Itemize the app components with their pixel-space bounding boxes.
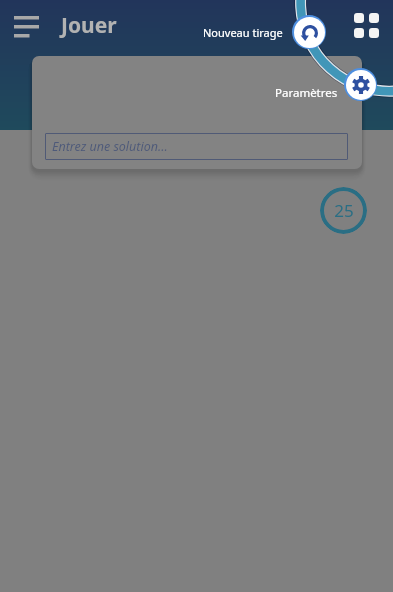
staticText: 25 xyxy=(334,199,354,222)
staticText: Jouer xyxy=(61,11,117,40)
button[interactable] xyxy=(0,130,393,592)
button[interactable]: 25 xyxy=(320,187,367,234)
staticText: Entrez une solution... xyxy=(52,138,168,155)
button[interactable]: Entrez une solution... xyxy=(45,133,348,160)
button[interactable]: Menu grid xyxy=(343,2,390,49)
button[interactable]: Menu xyxy=(2,2,51,51)
staticText: Paramètres xyxy=(275,85,338,101)
button[interactable]: Nouveau tirage xyxy=(292,15,326,49)
button[interactable]: Paramètres xyxy=(344,68,377,101)
staticText: Nouveau tirage xyxy=(203,25,283,40)
